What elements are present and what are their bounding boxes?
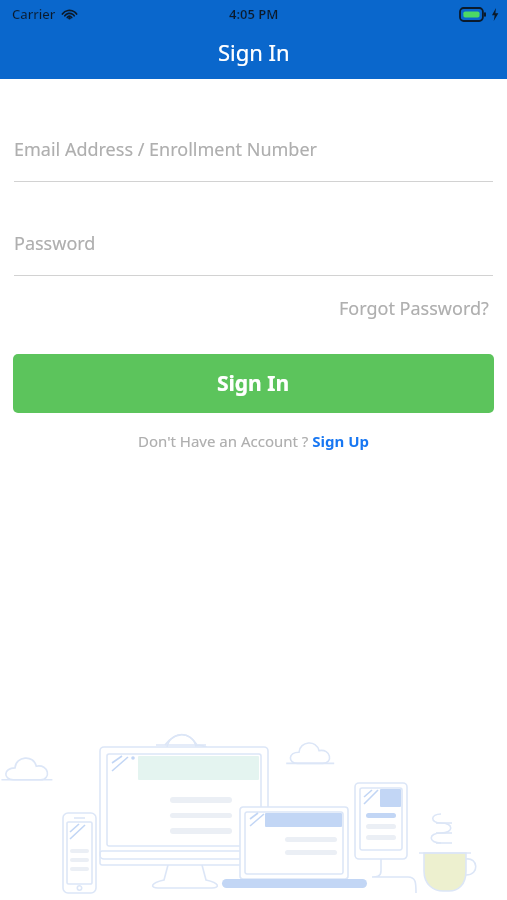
- button[interactable]: Don't Have an Account ? Sign Up: [132, 429, 375, 453]
- staticText: Email Address / Enrollment Number: [14, 137, 318, 162]
- staticText: Carrier: [12, 5, 56, 23]
- staticText: Sign In: [218, 37, 290, 67]
- button[interactable]: Sign In: [13, 354, 494, 413]
- button[interactable]: Forgot Password?: [335, 292, 493, 325]
- button[interactable]: Email Address / Enrollment Number: [0, 137, 507, 182]
- staticText: Sign In: [217, 369, 290, 398]
- staticText: 4:05 PM: [229, 5, 279, 23]
- staticText: Password: [14, 231, 96, 256]
- button[interactable]: Password: [0, 231, 507, 276]
- staticText: Don't Have an Account ? Sign Up: [138, 431, 369, 451]
- staticText: Forgot Password?: [339, 296, 489, 321]
